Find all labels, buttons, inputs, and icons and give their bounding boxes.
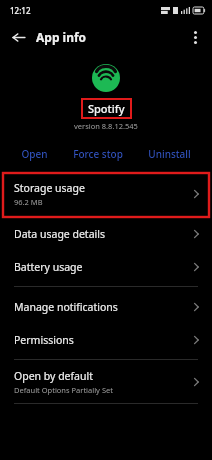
button[interactable]: Uninstall [142,142,197,166]
staticText: Data usage details [14,227,105,241]
staticText: Permissions [14,333,74,347]
staticText: 96.2 MB [14,197,43,207]
button[interactable]: Force stop [67,142,129,166]
staticText: Default Options Partially Set [14,385,113,395]
staticText: Battery usage [14,260,83,274]
staticText: Open [21,147,48,161]
button[interactable]: More options [182,24,208,50]
button[interactable]: Open [15,142,54,166]
staticText: Spotify [88,101,125,116]
staticText: App info [36,29,87,45]
staticText: Uninstall [148,147,191,161]
button[interactable]: Back [4,23,32,51]
button[interactable]: Open by default [0,363,212,401]
button[interactable]: Data usage details [0,217,212,250]
staticText: Storage usage [14,181,85,195]
button[interactable]: Permissions [0,323,212,356]
button[interactable]: Battery usage [0,250,212,283]
staticText: Open by default [14,369,94,383]
staticText: 12:12 [10,5,31,16]
staticText: Manage notifications [14,300,118,314]
staticText: version 8.8.12.545 [74,121,138,131]
button[interactable]: Manage notifications [0,290,212,323]
button[interactable]: Storage usage [0,175,212,213]
staticText: Force stop [73,147,123,161]
